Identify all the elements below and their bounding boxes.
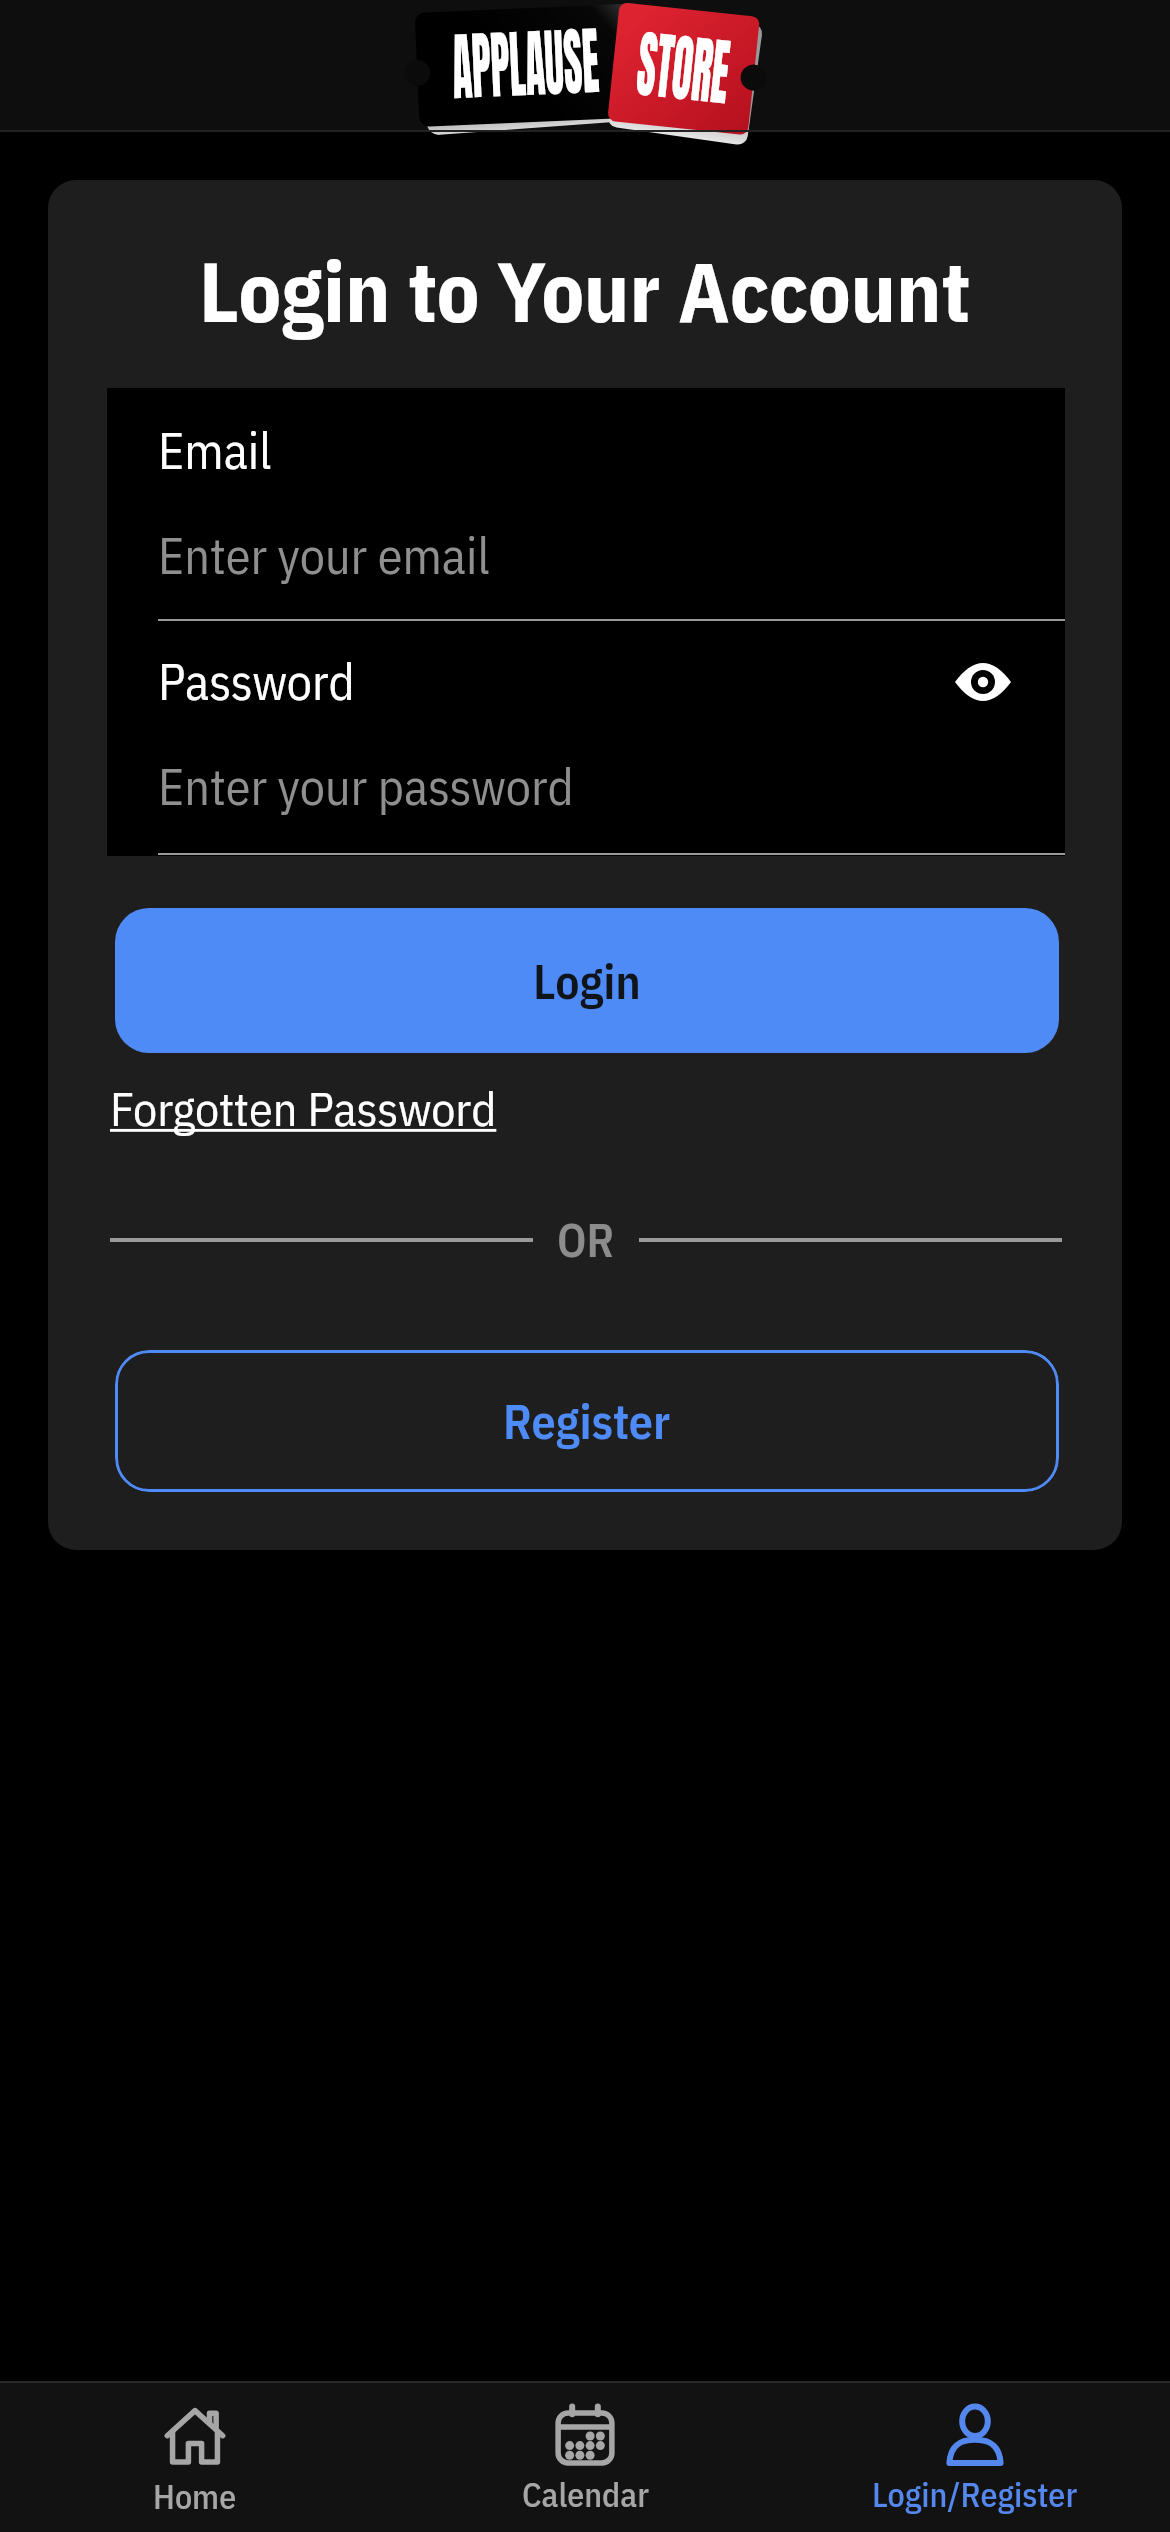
button[interactable]: Register: [115, 1350, 1059, 1492]
staticText: Enter your password: [158, 754, 574, 819]
staticText: Email: [158, 418, 272, 483]
staticText: Login to Your Account: [199, 236, 971, 345]
staticText: Enter your email: [158, 523, 490, 588]
button[interactable]: Login/Register: [780, 2383, 1170, 2532]
button[interactable]: Home: [0, 2383, 390, 2532]
button[interactable]: Calendar: [390, 2383, 780, 2532]
staticText: Home: [153, 2474, 237, 2518]
staticText: STORE: [632, 8, 735, 127]
staticText: Login/Register: [872, 2472, 1078, 2516]
staticText: Password: [158, 649, 355, 714]
staticText: OR: [557, 1210, 615, 1270]
button[interactable]: Login: [115, 908, 1059, 1053]
staticText: Calendar: [522, 2472, 649, 2516]
staticText: Login: [533, 950, 641, 1012]
staticText: Register: [503, 1390, 671, 1452]
staticText: APPLAUSE: [450, 5, 601, 122]
button[interactable]: Forgotten Password: [110, 1077, 497, 1139]
